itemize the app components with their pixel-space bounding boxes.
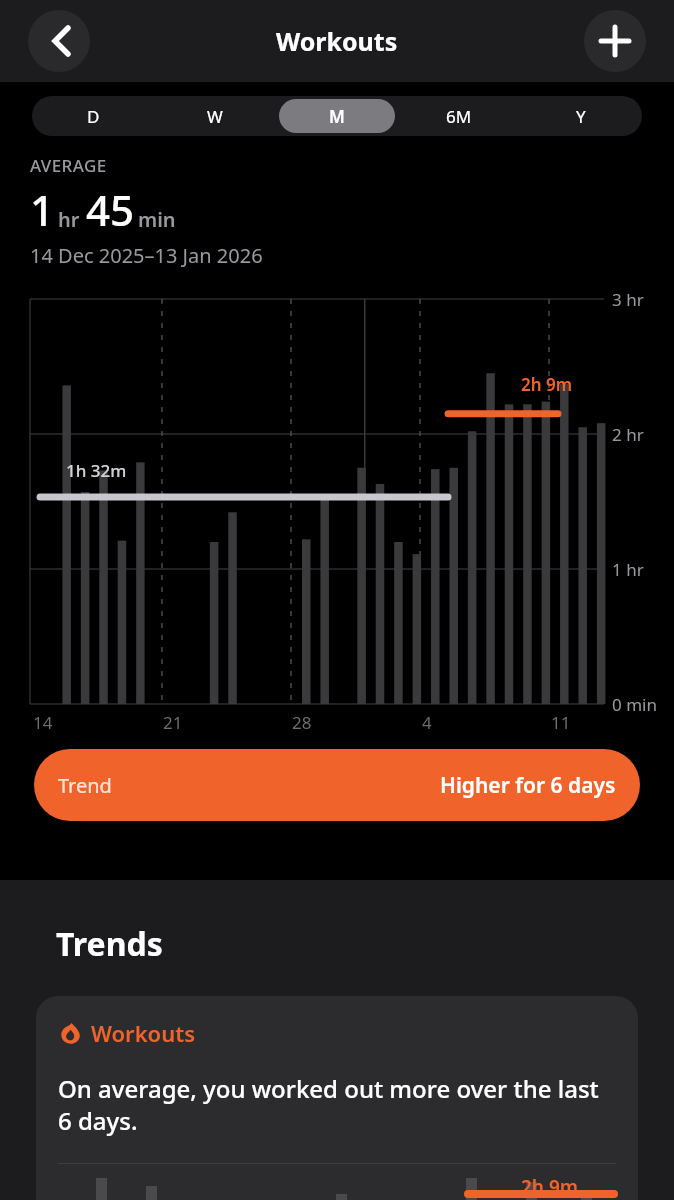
button[interactable]: Back: [28, 10, 90, 72]
staticText: hr: [58, 206, 80, 233]
staticText: 1: [30, 181, 55, 238]
button[interactable]: Add workout: [584, 10, 646, 72]
staticText: 3 hr: [612, 288, 644, 311]
staticText: 2h 9m: [521, 373, 573, 396]
staticText: 4: [422, 711, 432, 734]
staticText: Y: [576, 105, 586, 128]
button[interactable]: Workouts: [36, 996, 638, 1200]
staticText: M: [329, 105, 345, 128]
button[interactable]: M: [279, 99, 395, 133]
staticText: 1 hr: [612, 558, 644, 581]
staticText: Trends: [56, 922, 163, 966]
staticText: 6M: [446, 105, 472, 128]
staticText: 0 min: [612, 693, 657, 716]
button[interactable]: 6M: [401, 99, 517, 133]
staticText: 28: [292, 711, 312, 734]
staticText: min: [138, 206, 176, 233]
staticText: 2h 9m: [521, 1174, 579, 1200]
staticText: Workouts: [276, 24, 398, 58]
staticText: 14 Dec 2025–13 Jan 2026: [30, 242, 263, 269]
staticText: D: [87, 105, 100, 128]
staticText: On average, you worked out more over the…: [58, 1072, 616, 1137]
staticText: Workouts: [91, 1018, 195, 1048]
staticText: AVERAGE: [30, 154, 107, 177]
staticText: 11: [551, 711, 571, 734]
staticText: Trend: [58, 772, 112, 799]
staticText: W: [207, 105, 223, 128]
staticText: Higher for 6 days: [440, 771, 616, 800]
staticText: 45: [86, 181, 135, 238]
button[interactable]: Y: [523, 99, 639, 133]
button[interactable]: D: [35, 99, 151, 133]
staticText: 1h 32m: [66, 459, 127, 482]
staticText: 14: [33, 711, 53, 734]
button[interactable]: Trend: [34, 749, 640, 821]
staticText: 2 hr: [612, 423, 644, 446]
button[interactable]: W: [157, 99, 273, 133]
staticText: 21: [163, 711, 183, 734]
